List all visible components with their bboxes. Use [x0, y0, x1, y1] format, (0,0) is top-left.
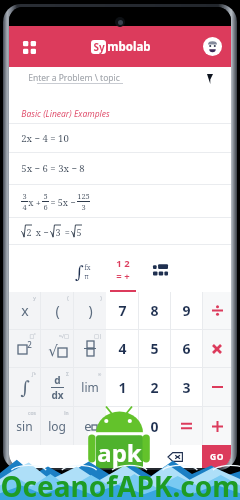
staticText: 2: [27, 339, 32, 350]
staticText: 2: [26, 226, 32, 238]
staticText: .: [120, 417, 124, 436]
button[interactable]: □|: [74, 330, 106, 367]
staticText: = 5x −: [50, 196, 76, 208]
button[interactable]: 2x − 4 = 10: [9, 124, 231, 152]
staticText: 3: [182, 378, 191, 397]
staticText: Enter a Problem \ topic: [28, 72, 120, 84]
staticText: π: [84, 272, 89, 281]
staticText: ∫: [75, 262, 84, 282]
button[interactable]: Functions: [65, 252, 101, 292]
staticText: fx: [84, 263, 91, 272]
staticText: 5: [76, 226, 82, 238]
staticText: 3: [22, 191, 27, 201]
staticText: ∫: [20, 377, 30, 398]
button[interactable]: (: [41, 292, 73, 329]
staticText: Sy: [93, 40, 105, 54]
staticText: 7: [118, 301, 127, 320]
staticText: y: [33, 295, 36, 302]
button[interactable]: 8: [139, 292, 170, 329]
staticText: 5: [43, 191, 48, 201]
button[interactable]: Multiply: [203, 330, 231, 367]
button[interactable]: y: [9, 292, 40, 329]
button[interactable]: 9: [171, 292, 202, 329]
button[interactable]: Σ: [41, 368, 73, 406]
button[interactable]: 5x − 6 = 3x − 8: [9, 153, 231, 184]
button[interactable]: Equals: [171, 407, 202, 445]
staticText: lim: [81, 379, 99, 395]
staticText: 6: [43, 202, 48, 212]
staticText: □|: [94, 333, 102, 340]
staticText: x: [21, 301, 29, 320]
staticText: OceanofAPK.com: [0, 467, 240, 500]
staticText: GO: [210, 451, 224, 463]
button[interactable]: 3: [171, 368, 202, 406]
button[interactable]: 0: [139, 407, 170, 445]
staticText: ): [100, 295, 102, 302]
button[interactable]: Divide: [203, 292, 231, 329]
button[interactable]: 5: [139, 330, 170, 367]
staticText: 3: [81, 202, 86, 212]
staticText: 125: [77, 191, 90, 201]
button[interactable]: Backspace: [149, 445, 202, 468]
staticText: 5x − 6 = 3x − 8: [21, 162, 85, 175]
staticText: d: [54, 373, 61, 387]
button[interactable]: ): [74, 292, 106, 329]
staticText: 3: [55, 226, 61, 238]
button[interactable]: GO: [202, 445, 231, 468]
button[interactable]: Minus: [203, 368, 231, 406]
staticText: ∞: [97, 371, 102, 377]
staticText: x +: [28, 196, 41, 208]
staticText: e: [84, 417, 92, 435]
staticText: mbolab: [107, 39, 151, 55]
staticText: (: [55, 301, 60, 320]
button[interactable]: ⁿ√□: [41, 330, 73, 367]
button[interactable]: 1: [106, 368, 138, 406]
staticText: =: [61, 226, 71, 238]
staticText: 1 2: [116, 257, 130, 270]
staticText: ∫ᵇ: [31, 371, 36, 378]
button[interactable]: 2: [139, 368, 170, 406]
button[interactable]: Keypad: [145, 252, 175, 292]
staticText: cos: [28, 410, 36, 417]
staticText: dx: [51, 388, 64, 402]
staticText: 4: [118, 339, 127, 358]
button[interactable]: Plus: [203, 407, 231, 445]
staticText: ⁿ√□: [59, 333, 69, 340]
staticText: log: [48, 418, 66, 434]
staticText: ): [88, 301, 93, 320]
button[interactable]: □˚: [9, 330, 40, 367]
staticText: 2x − 4 = 10: [21, 132, 69, 145]
staticText: Basic (Linear) Examples: [21, 108, 110, 120]
button[interactable]: .: [106, 407, 138, 445]
button[interactable]: ∫ᵇ: [9, 368, 40, 406]
staticText: 1: [118, 378, 127, 397]
button[interactable]: Numbers: [108, 252, 138, 292]
staticText: 6: [182, 339, 191, 358]
staticText: = +: [116, 270, 130, 283]
staticText: □˚: [29, 333, 36, 340]
staticText: √: [48, 342, 58, 359]
staticText: apk: [97, 436, 142, 469]
staticText: Σ: [66, 371, 69, 378]
staticText: 4: [22, 202, 27, 212]
staticText: ln: [64, 410, 69, 417]
staticText: 9: [182, 301, 191, 320]
staticText: 5: [150, 339, 159, 358]
button[interactable]: Menu: [18, 36, 40, 58]
staticText: 8: [150, 301, 159, 320]
button[interactable]: 2: [9, 218, 231, 244]
button[interactable]: 3: [9, 185, 231, 217]
staticText: x −: [32, 226, 50, 238]
button[interactable]: e: [74, 407, 106, 445]
button[interactable]: 6: [171, 330, 202, 367]
button[interactable]: Profile: [203, 37, 222, 56]
staticText: (: [67, 295, 69, 302]
button[interactable]: ∞: [74, 368, 106, 406]
button[interactable]: 4: [106, 330, 138, 367]
button[interactable]: cos: [9, 407, 40, 445]
staticText: 0: [150, 417, 159, 436]
button[interactable]: ln: [41, 407, 73, 445]
staticText: 2: [150, 378, 159, 397]
button[interactable]: 7: [106, 292, 138, 329]
staticText: sin: [16, 418, 33, 434]
